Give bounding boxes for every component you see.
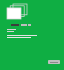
button[interactable]: Brand mark <box>7 23 60 26</box>
button[interactable]: Action <box>48 60 60 64</box>
